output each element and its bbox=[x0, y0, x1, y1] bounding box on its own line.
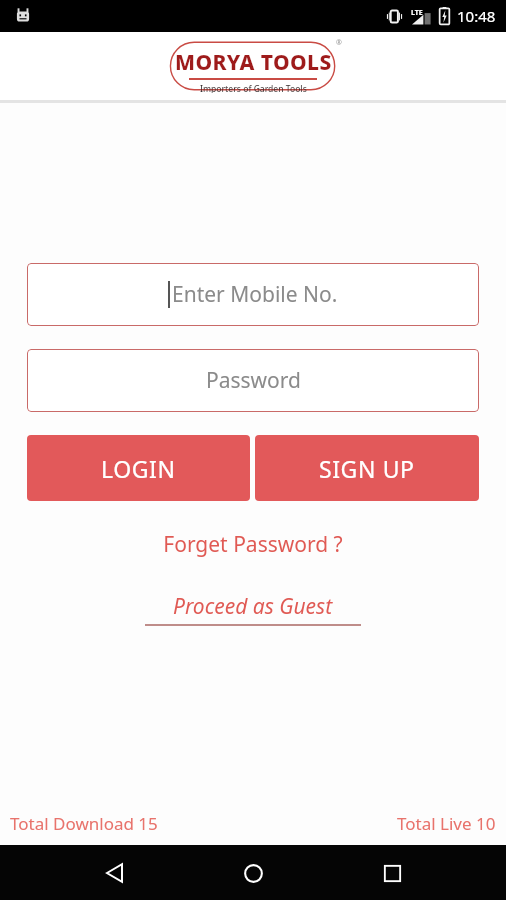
staticText: Proceed as Guest bbox=[173, 592, 333, 621]
staticText: Enter Mobile No. bbox=[172, 280, 338, 309]
staticText: MORYA TOOLS bbox=[175, 48, 332, 77]
staticText: Total Live 10 bbox=[397, 812, 496, 835]
button[interactable]: Proceed as Guest bbox=[137, 589, 369, 629]
staticText: Total Download 15 bbox=[10, 812, 158, 835]
staticText: Forget Password ? bbox=[163, 530, 343, 559]
staticText: SIGN UP bbox=[319, 453, 415, 484]
button[interactable]: Home bbox=[229, 849, 277, 897]
staticText: Importers of Garden Tools bbox=[200, 83, 307, 93]
button[interactable]: Recent apps bbox=[368, 849, 416, 897]
button[interactable]: Back bbox=[91, 849, 139, 897]
staticText: ® bbox=[336, 38, 342, 48]
staticText: 10:48 bbox=[457, 6, 496, 26]
staticText: Password bbox=[206, 366, 301, 395]
button[interactable]: LOGIN bbox=[27, 435, 250, 501]
button[interactable]: Forget Password ? bbox=[153, 526, 353, 563]
button[interactable]: SIGN UP bbox=[255, 435, 479, 501]
staticText: LOGIN bbox=[101, 453, 176, 484]
button[interactable]: Enter Mobile No. bbox=[27, 263, 479, 326]
staticText: LTE bbox=[411, 8, 423, 18]
button[interactable]: Password bbox=[27, 349, 479, 412]
